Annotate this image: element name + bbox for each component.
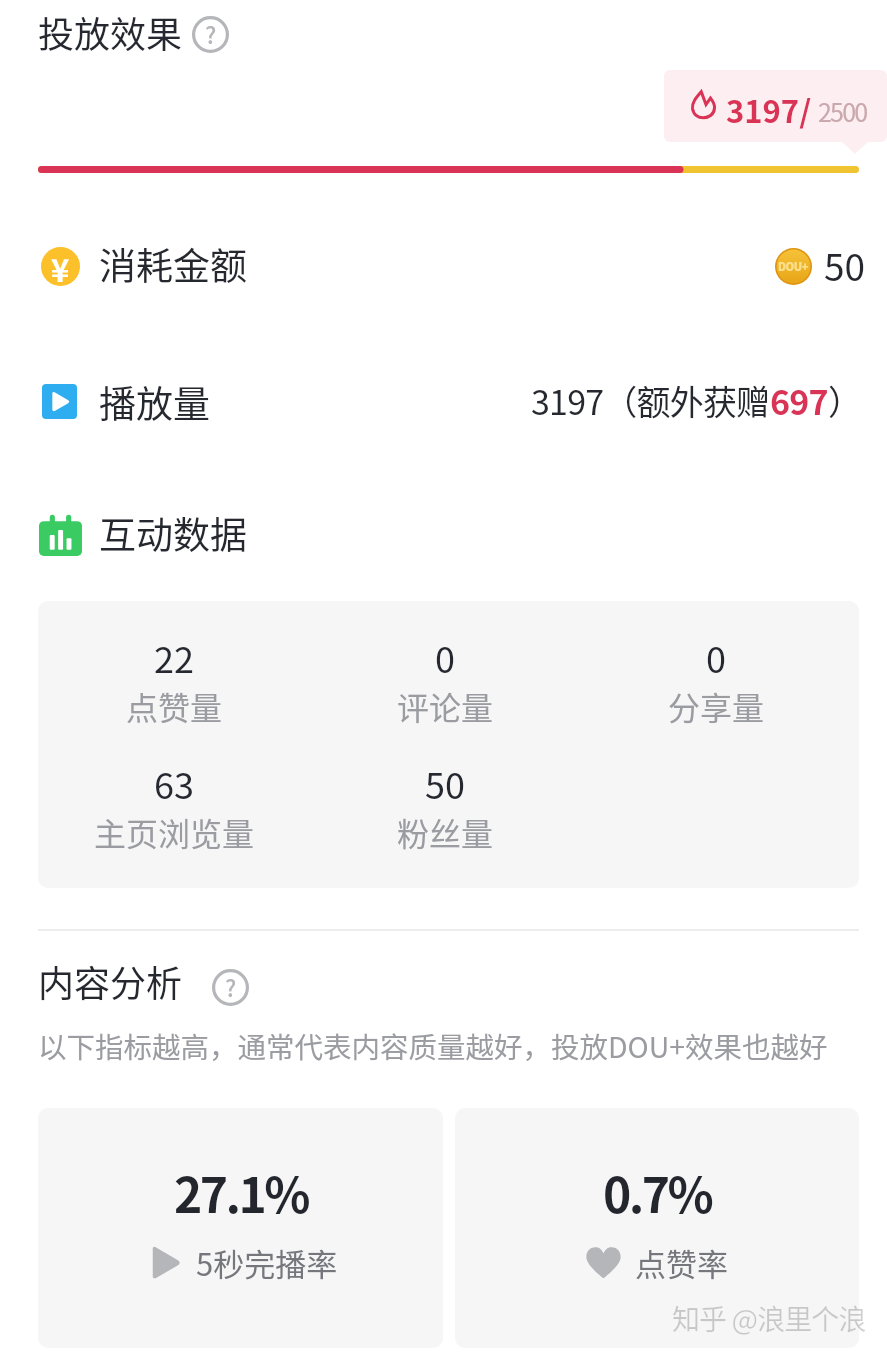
button[interactable]: 关于内容分析: [212, 969, 249, 1006]
staticText: 2500: [818, 93, 867, 129]
button[interactable]: ¥: [0, 237, 887, 297]
staticText: 27.1%: [174, 1157, 308, 1227]
staticText: 3197/: [726, 87, 812, 132]
button[interactable]: 3197/: [664, 70, 887, 142]
staticText: DOU+: [778, 258, 809, 274]
staticText: 内容分析: [38, 955, 183, 1007]
button[interactable]: 27.1%: [38, 1108, 443, 1348]
staticText: 粉丝量: [397, 809, 494, 852]
staticText: 50: [824, 238, 866, 292]
staticText: 评论量: [397, 683, 494, 726]
staticText: ?: [205, 17, 217, 50]
staticText: 互动数据: [99, 506, 247, 560]
staticText: 5秒完播率: [196, 1240, 338, 1285]
staticText: 0.7%: [603, 1157, 712, 1227]
staticText: ?: [225, 970, 237, 1003]
button[interactable]: DOU+: [775, 248, 812, 285]
staticText: 分享量: [668, 683, 765, 726]
staticText: 63: [154, 757, 194, 809]
staticText: 消耗金额: [99, 237, 247, 291]
button[interactable]: 关于投放效果: [192, 16, 229, 53]
staticText: 0: [435, 631, 455, 683]
staticText: 22: [154, 631, 194, 683]
staticText: 投放效果: [38, 6, 183, 58]
staticText: 点赞率: [635, 1240, 728, 1285]
staticText: 3197（额外获赠: [531, 376, 770, 425]
button[interactable]: 播放量: [0, 372, 887, 432]
staticText: 以下指标越高，通常代表内容质量越好，投放DOU+效果也越好: [38, 1025, 828, 1066]
staticText: 知乎 @浪里个浪: [672, 1298, 866, 1339]
staticText: 主页浏览量: [94, 809, 255, 852]
staticText: 50: [425, 757, 465, 809]
staticText: 697: [770, 376, 828, 425]
staticText: 点赞量: [126, 683, 223, 726]
staticText: ）: [828, 376, 862, 425]
staticText: 0: [706, 631, 726, 683]
button[interactable]: 0.7%: [455, 1108, 859, 1348]
staticText: 播放量: [99, 375, 210, 429]
staticText: ¥: [51, 247, 70, 285]
